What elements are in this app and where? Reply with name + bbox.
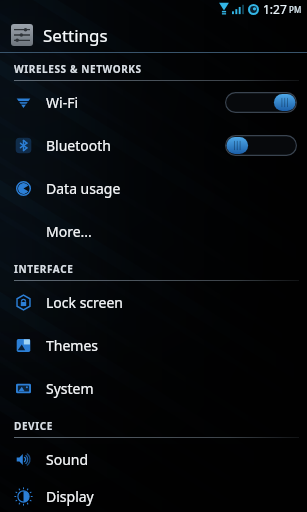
button[interactable]: Bluetooth [0, 124, 307, 167]
staticText: More... [46, 222, 92, 241]
staticText: Themes [46, 336, 99, 355]
staticText: INTERFACE [14, 262, 74, 276]
button[interactable]: Data usage [0, 167, 307, 210]
staticText: Wi-Fi [46, 93, 79, 112]
button[interactable]: On [225, 92, 297, 113]
button[interactable]: Display [0, 481, 307, 512]
staticText: Settings [43, 24, 108, 47]
button[interactable]: Sound [0, 438, 307, 481]
staticText: Data usage [46, 179, 121, 198]
button[interactable]: System [0, 367, 307, 410]
button[interactable]: Lock screen [0, 281, 307, 324]
button[interactable]: Settings app icon [11, 24, 33, 46]
staticText: System [46, 379, 94, 398]
button[interactable]: Off [225, 135, 297, 156]
staticText: DEVICE [14, 419, 53, 433]
button[interactable]: Themes [0, 324, 307, 367]
button[interactable]: Wi-Fi [0, 81, 307, 124]
staticText: Display [46, 487, 94, 506]
staticText: Lock screen [46, 293, 124, 312]
staticText: 1:27 [263, 1, 287, 17]
button[interactable]: More... [0, 210, 307, 253]
staticText: Bluetooth [46, 136, 111, 155]
staticText: WIRELESS & NETWORKS [14, 62, 142, 76]
staticText: PM [289, 4, 302, 15]
staticText: Sound [46, 450, 89, 469]
